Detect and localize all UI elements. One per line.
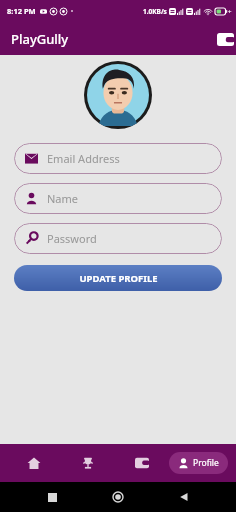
button[interactable]: Name: [14, 183, 222, 214]
button[interactable]: Email Address: [14, 143, 222, 174]
button[interactable]: Wallet: [115, 444, 169, 482]
button[interactable]: Password: [14, 223, 222, 254]
button[interactable]: Home: [6, 444, 61, 482]
staticText: Password: [47, 231, 97, 246]
button[interactable]: Back: [170, 483, 198, 511]
staticText: Email Address: [47, 151, 120, 166]
button[interactable]: Leaderboard: [61, 444, 115, 482]
button[interactable]: Profile picture: [84, 61, 152, 129]
button[interactable]: UPDATE PROFILE: [14, 265, 222, 291]
staticText: 8:12 PM: [7, 6, 36, 16]
button[interactable]: Home: [104, 483, 132, 511]
staticText: UPDATE PROFILE: [79, 272, 158, 285]
staticText: Profile: [193, 457, 219, 469]
staticText: +: [228, 8, 232, 16]
staticText: PlayGully: [11, 30, 69, 48]
button[interactable]: Profile: [169, 452, 228, 474]
button[interactable]: Recents: [38, 483, 66, 511]
staticText: 1.0KB/s: [143, 7, 167, 16]
button[interactable]: Wallet: [214, 28, 236, 50]
staticText: Name: [47, 191, 79, 206]
